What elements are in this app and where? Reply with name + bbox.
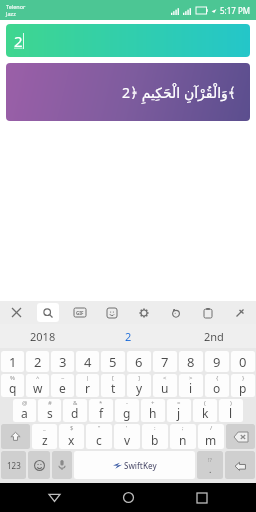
staticText: GIF [76, 310, 84, 316]
button[interactable]: SwiftKey [74, 451, 195, 479]
staticText: e [59, 380, 66, 396]
staticText: $ [70, 424, 74, 432]
button[interactable]: 9 [205, 351, 229, 372]
button[interactable]: { [205, 374, 229, 397]
button[interactable]: ) [219, 399, 243, 422]
button[interactable]: [ [101, 374, 125, 397]
staticText: h [149, 405, 157, 421]
button[interactable]: = [167, 399, 191, 422]
button[interactable]: _ [32, 424, 57, 449]
button[interactable]: Delete [226, 424, 255, 449]
button[interactable]: Home [108, 483, 148, 512]
button[interactable]: ; [170, 424, 196, 449]
button[interactable]: @ [13, 399, 36, 422]
button[interactable]: Clipboard [192, 301, 224, 324]
staticText: ) [230, 399, 232, 407]
button[interactable]: / [198, 424, 224, 449]
staticText: 6 [135, 353, 143, 371]
button[interactable]: ^ [26, 374, 49, 397]
button[interactable]: GIF [64, 301, 96, 324]
button[interactable]: ~ [51, 374, 74, 397]
button[interactable]: - [115, 399, 139, 422]
staticText: 4 [84, 353, 92, 371]
button[interactable]: 2018 [0, 324, 86, 348]
button[interactable]: 2 [6, 24, 250, 57]
button[interactable]: Punctuation [197, 451, 223, 479]
staticText: l [229, 405, 233, 421]
button[interactable]: Recents [182, 483, 222, 512]
button[interactable]: 1 [1, 351, 24, 372]
staticText: y [136, 380, 143, 396]
staticText: # [48, 399, 52, 407]
button[interactable]: 2 [26, 351, 49, 372]
staticText: q [9, 380, 17, 396]
button[interactable]: ' [114, 424, 140, 449]
staticText: 123 [7, 460, 21, 471]
button[interactable]: 4 [76, 351, 99, 372]
button[interactable]: وَالْقُرْآنِ الْحَكِيمِ ﴿2﴾ [6, 63, 250, 121]
button[interactable]: + [141, 399, 165, 422]
staticText: m [205, 432, 217, 448]
staticText: ~ [61, 374, 65, 382]
button[interactable]: * [89, 399, 113, 422]
staticText: d [71, 405, 79, 421]
staticText: 1 [9, 353, 17, 371]
button[interactable]: % [1, 374, 24, 397]
staticText: i [189, 380, 193, 396]
staticText: 2018 [30, 329, 56, 344]
staticText: > [189, 374, 193, 382]
staticText: ^ [36, 374, 40, 382]
button[interactable]: ] [127, 374, 151, 397]
button[interactable]: < [153, 374, 177, 397]
button[interactable]: Back [34, 483, 74, 512]
button[interactable]: 2nd [171, 324, 256, 348]
button[interactable]: " [86, 424, 112, 449]
staticText: n [179, 432, 187, 448]
button[interactable]: 6 [127, 351, 151, 372]
staticText: " [98, 424, 101, 432]
staticText: r [85, 380, 90, 396]
button[interactable]: Emoji [28, 451, 50, 479]
staticText: 2 [34, 353, 42, 371]
button[interactable]: 7 [153, 351, 177, 372]
button[interactable]: Close [0, 301, 32, 324]
staticText: _ [43, 424, 46, 432]
staticText: k [202, 405, 209, 421]
button[interactable]: 8 [179, 351, 203, 372]
staticText: 3 [59, 353, 67, 371]
button[interactable]: & [63, 399, 87, 422]
button[interactable]: Numbers [1, 451, 26, 479]
button[interactable]: Enter [225, 451, 255, 479]
button[interactable]: ( [193, 399, 217, 422]
button[interactable]: } [231, 374, 255, 397]
staticText: [ [112, 374, 114, 382]
button[interactable]: Shift [1, 424, 30, 449]
button[interactable]: Sticker [96, 301, 128, 324]
button[interactable]: 5 [101, 351, 125, 372]
staticText: & [73, 399, 78, 407]
button[interactable]: 3 [51, 351, 74, 372]
button[interactable]: # [38, 399, 61, 422]
button[interactable]: 0 [231, 351, 255, 372]
staticText: 9 [213, 353, 221, 371]
staticText: = [177, 399, 181, 407]
button[interactable]: | [76, 374, 99, 397]
button[interactable]: 2 [86, 324, 171, 348]
button[interactable]: > [179, 374, 203, 397]
button[interactable]: Settings [128, 301, 160, 324]
staticText: v [124, 432, 131, 448]
staticText: SwiftKey [124, 460, 157, 471]
staticText: 8 [187, 353, 195, 371]
staticText: j [177, 405, 181, 421]
staticText: 7 [161, 353, 169, 371]
button[interactable]: $ [59, 424, 84, 449]
button[interactable]: Pin [224, 301, 256, 324]
staticText: c [96, 432, 102, 448]
button[interactable]: Search [32, 301, 64, 324]
button[interactable]: : [142, 424, 168, 449]
staticText: Telenor [6, 3, 26, 10]
button[interactable]: Themes [160, 301, 192, 324]
button[interactable]: Voice input [52, 451, 72, 479]
staticText: 2 [125, 329, 132, 344]
staticText: وَالْقُرْآنِ الْحَكِيمِ ﴿2﴾ [6, 83, 236, 102]
